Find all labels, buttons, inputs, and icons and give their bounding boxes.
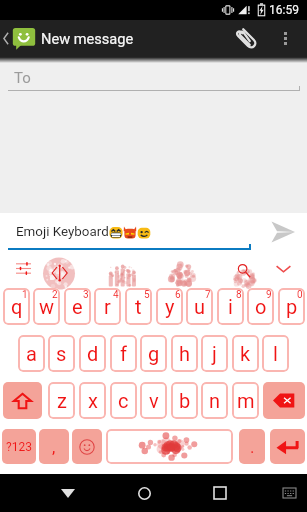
staticText: y	[165, 295, 175, 318]
button[interactable]: Enter	[270, 429, 305, 464]
button[interactable]: j	[201, 335, 228, 372]
staticText: q	[11, 295, 23, 318]
button[interactable]: Home	[122, 474, 166, 512]
staticText: .	[250, 437, 255, 457]
button[interactable]: t	[125, 288, 152, 325]
staticText: 9	[266, 289, 272, 301]
staticText: b	[179, 389, 191, 412]
button[interactable]: f	[110, 335, 137, 372]
staticText: r	[104, 295, 111, 318]
staticText: 5	[144, 289, 150, 301]
button[interactable]: u	[186, 288, 213, 325]
staticText: ?123	[6, 440, 32, 454]
staticText: i	[228, 295, 233, 318]
staticText: a	[26, 342, 37, 365]
button[interactable]: Switch keyboard	[274, 474, 304, 512]
staticText: 3	[83, 289, 89, 301]
staticText: 6	[175, 289, 181, 301]
button[interactable]: Collapse keyboard	[269, 254, 298, 283]
button[interactable]: g	[140, 335, 167, 372]
button[interactable]: p	[278, 288, 305, 325]
button[interactable]: Comma	[39, 429, 69, 464]
button[interactable]: b	[171, 382, 198, 419]
staticText: l	[273, 342, 278, 365]
staticText: g	[148, 342, 160, 365]
button[interactable]: i	[217, 288, 244, 325]
button[interactable]: o	[247, 288, 274, 325]
staticText: t	[135, 295, 142, 318]
button[interactable]: Delete	[263, 382, 305, 419]
staticText: u	[194, 295, 206, 318]
staticText: 7	[205, 289, 211, 301]
staticText: n	[209, 389, 221, 412]
staticText: ,	[52, 437, 56, 457]
button[interactable]: w	[33, 288, 60, 325]
button[interactable]: x	[79, 382, 106, 419]
button[interactable]: s	[48, 335, 75, 372]
button[interactable]: Attach	[225, 20, 267, 57]
button[interactable]: l	[262, 335, 289, 372]
staticText: w	[39, 295, 55, 318]
staticText: 4	[113, 289, 119, 301]
button[interactable]: k	[232, 335, 259, 372]
staticText: New message	[41, 30, 134, 47]
button[interactable]: More options	[267, 20, 303, 57]
button[interactable]: h	[171, 335, 198, 372]
staticText: 16:59	[269, 3, 299, 17]
staticText: 2	[52, 289, 58, 301]
button[interactable]: Shift	[3, 382, 42, 419]
button[interactable]: Send	[258, 213, 307, 250]
button[interactable]: c	[110, 382, 137, 419]
staticText: d	[87, 342, 99, 365]
button[interactable]: Sticker pack 1	[41, 257, 77, 288]
staticText: z	[57, 389, 67, 412]
staticText: Emoji Keyboard	[16, 224, 109, 240]
staticText: 8	[236, 289, 242, 301]
staticText: h	[179, 342, 191, 365]
staticText: To	[14, 69, 31, 87]
button[interactable]: Space	[106, 429, 233, 464]
button[interactable]: m	[232, 382, 259, 419]
staticText: x	[88, 389, 98, 412]
button[interactable]: Period	[239, 429, 265, 464]
button[interactable]: Back	[46, 474, 90, 512]
button[interactable]: n	[201, 382, 228, 419]
staticText: o	[255, 295, 267, 318]
staticText: e	[72, 295, 83, 318]
button[interactable]: Emoji	[72, 429, 102, 464]
staticText: v	[149, 389, 159, 412]
button[interactable]: Keyboard settings	[8, 253, 38, 283]
button[interactable]: e	[64, 288, 91, 325]
button[interactable]: v	[140, 382, 167, 419]
staticText: k	[240, 342, 251, 365]
staticText: 1	[22, 289, 28, 301]
button[interactable]: Sticker pack 4	[227, 257, 263, 288]
staticText: m	[237, 389, 255, 412]
button[interactable]: Sticker pack 2	[103, 257, 139, 288]
staticText: p	[286, 295, 298, 318]
staticText: 0	[297, 289, 303, 301]
button[interactable]: q	[3, 288, 30, 325]
button[interactable]: a	[18, 335, 45, 372]
button[interactable]: Symbols	[2, 429, 36, 464]
button[interactable]: y	[156, 288, 183, 325]
staticText: c	[118, 389, 129, 412]
button[interactable]: Recent apps	[198, 474, 242, 512]
button[interactable]: z	[48, 382, 75, 419]
staticText: f	[120, 342, 127, 365]
staticText: s	[56, 342, 67, 365]
button[interactable]: d	[79, 335, 106, 372]
staticText: j	[212, 342, 217, 365]
button[interactable]: Sticker pack 3	[164, 257, 200, 288]
button[interactable]: Up	[0, 20, 37, 57]
button[interactable]: r	[94, 288, 121, 325]
